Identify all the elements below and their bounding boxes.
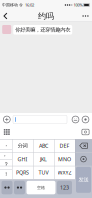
staticText: GHI [17,156,27,163]
button[interactable]: DEF [54,139,75,152]
button[interactable]: GHI [12,152,33,166]
button[interactable]: JKL [33,152,54,166]
button[interactable]: ， [0,139,12,149]
staticText: 。 [3,151,8,157]
staticText: ABC [39,142,48,149]
staticText: 空格 [37,185,45,190]
button[interactable]: 分词 [12,139,33,152]
staticText: TUV [38,169,48,176]
staticText: 100% [72,2,83,8]
button[interactable]: 发送 [76,167,91,193]
staticText: 令 [18,2,23,7]
button[interactable]: Back [0,10,11,22]
button[interactable]: 。 [0,149,12,159]
staticText: JKL [40,156,47,163]
button[interactable]: Emoji [70,113,81,126]
button[interactable]: Voice input [75,152,92,166]
button[interactable]: ！ [0,169,12,179]
button[interactable]: PQRS [12,166,33,179]
button[interactable]: More actions [0,113,13,126]
staticText: 分词 [17,142,27,149]
button[interactable]: More [79,10,92,22]
staticText: PQRS [16,169,29,176]
button[interactable]: Camera [79,126,92,138]
staticText: 16:02 [23,2,34,8]
button[interactable]: WXYZ [54,166,75,179]
button[interactable] [1,181,12,194]
staticText: DEF [59,142,69,149]
staticText: ！ [3,171,8,177]
button[interactable]: Delete [75,139,92,152]
staticText: 123 [60,184,69,191]
staticText: WXYZ [57,169,71,176]
button[interactable] [14,181,25,194]
button[interactable]: Voice message [80,113,91,126]
staticText: 约吗 [38,11,54,21]
staticText: ？ [3,161,8,167]
button[interactable]: ？ [0,159,12,169]
button[interactable]: Keyboard [0,126,13,138]
button[interactable]: MNO [54,152,75,166]
button[interactable]: 空格 [26,181,55,194]
button[interactable]: TUV [33,166,54,179]
staticText: MNO [58,156,71,163]
staticText: 发送 [78,176,88,183]
staticText: 中国移动 [2,2,18,7]
button[interactable]: 123 [57,181,72,194]
button[interactable]: ABC [33,139,54,152]
staticText: 你好美嘛，还穿情趣内衣 [15,26,70,33]
staticText: ， [3,141,8,147]
